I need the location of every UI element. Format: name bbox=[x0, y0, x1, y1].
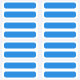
button[interactable] bbox=[42, 41, 78, 59]
button[interactable] bbox=[42, 21, 78, 39]
button[interactable] bbox=[2, 1, 38, 19]
button[interactable] bbox=[2, 21, 38, 39]
button[interactable] bbox=[2, 61, 38, 79]
button[interactable] bbox=[2, 41, 38, 59]
button[interactable] bbox=[42, 61, 78, 79]
button[interactable] bbox=[42, 1, 78, 19]
